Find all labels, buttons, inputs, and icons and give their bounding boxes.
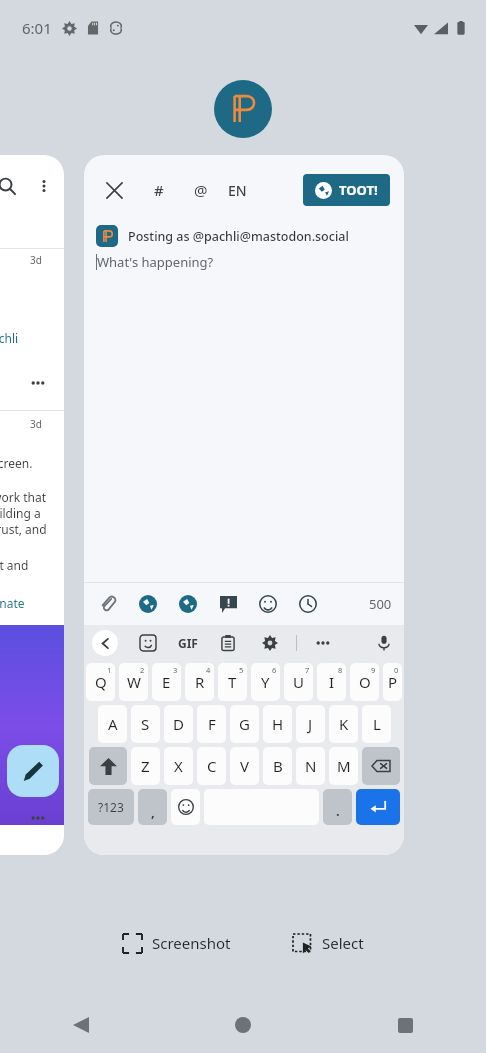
button[interactable]: G xyxy=(230,705,259,743)
button[interactable]: Recent apps xyxy=(324,997,486,1053)
staticText: W xyxy=(127,672,141,692)
staticText: 5 xyxy=(239,665,244,675)
staticText: A xyxy=(108,714,118,734)
button[interactable]: Emoji xyxy=(256,592,280,616)
staticText: Select xyxy=(322,933,364,953)
button[interactable]: Enter xyxy=(356,789,400,825)
button[interactable]: K xyxy=(329,705,358,743)
button[interactable]: Z xyxy=(131,747,160,785)
button[interactable]: Mention xyxy=(186,175,216,205)
staticText: X xyxy=(174,756,183,776)
staticText: O xyxy=(359,672,371,692)
staticText: achli xyxy=(0,330,19,346)
button[interactable]: Select xyxy=(283,925,374,961)
staticText: K xyxy=(339,714,349,734)
button[interactable]: M xyxy=(329,747,358,785)
button[interactable]: Shift xyxy=(89,747,127,785)
button[interactable]: N xyxy=(296,747,325,785)
staticText: N xyxy=(305,756,317,776)
staticText: D xyxy=(173,714,184,734)
button[interactable]: TOOT! xyxy=(303,174,390,206)
button[interactable]: More xyxy=(311,631,335,655)
button[interactable]: O xyxy=(350,663,379,701)
staticText: ?123 xyxy=(98,799,124,815)
staticText: P xyxy=(388,672,398,692)
button[interactable]: Q xyxy=(86,663,115,701)
other: Pachli app icon xyxy=(214,80,272,138)
button[interactable]: Language xyxy=(176,592,200,616)
button[interactable]: EN xyxy=(228,175,247,205)
button[interactable]: W xyxy=(119,663,148,701)
button[interactable]: . xyxy=(323,789,352,825)
staticText: GIF xyxy=(178,635,198,651)
staticText: T xyxy=(228,672,237,692)
staticText: F xyxy=(208,714,216,734)
button[interactable]: E xyxy=(152,663,181,701)
staticText: @ xyxy=(194,180,208,200)
button[interactable]: Compose xyxy=(7,745,59,797)
staticText: 500 xyxy=(369,595,392,613)
staticText: S xyxy=(141,714,150,734)
button[interactable]: Back xyxy=(0,997,162,1053)
staticText: G xyxy=(239,714,250,734)
button[interactable]: Home xyxy=(162,997,324,1053)
button[interactable]: Screenshot xyxy=(113,925,241,961)
staticText: J xyxy=(308,714,313,734)
staticText: 6:01 xyxy=(22,18,52,38)
button[interactable]: H xyxy=(263,705,292,743)
button[interactable]: B xyxy=(263,747,292,785)
button[interactable]: P xyxy=(383,663,402,701)
button[interactable]: C xyxy=(197,747,226,785)
staticText: Z xyxy=(141,756,150,776)
staticText: H xyxy=(272,714,284,734)
staticText: 7 xyxy=(305,665,310,675)
button[interactable]: Close xyxy=(98,174,130,206)
staticText: EN xyxy=(228,181,247,200)
staticText: 3 xyxy=(173,665,178,675)
button[interactable]: I xyxy=(317,663,346,701)
staticText: Screenshot xyxy=(152,933,231,953)
button[interactable]: Clipboard xyxy=(216,631,240,655)
staticText: E xyxy=(162,672,171,692)
staticText: work that xyxy=(0,489,46,505)
button[interactable]: Attach file xyxy=(96,592,120,616)
button[interactable]: Keyboard settings xyxy=(258,631,282,655)
staticText: Q xyxy=(95,672,107,692)
staticText: 4 xyxy=(206,665,211,675)
staticText: . xyxy=(336,802,340,820)
button[interactable]: A xyxy=(98,705,127,743)
button[interactable]: S xyxy=(131,705,160,743)
staticText: L xyxy=(373,714,381,734)
button[interactable]: V xyxy=(230,747,259,785)
button[interactable]: X xyxy=(164,747,193,785)
button[interactable]: Emoji keyboard xyxy=(171,789,200,825)
button[interactable]: Y xyxy=(251,663,280,701)
button[interactable]: Backspace xyxy=(362,747,400,785)
staticText: onate xyxy=(0,595,25,611)
button[interactable]: F xyxy=(197,705,226,743)
staticText: screen. xyxy=(0,455,33,471)
button[interactable]: R xyxy=(185,663,214,701)
staticText: nt and xyxy=(0,557,29,573)
button[interactable]: T xyxy=(218,663,247,701)
staticText: 3d xyxy=(30,417,42,431)
button[interactable]: L xyxy=(362,705,391,743)
button[interactable]: Hashtag xyxy=(144,175,174,205)
button[interactable]: Stickers xyxy=(136,631,160,655)
button[interactable]: Schedule xyxy=(296,592,320,616)
button[interactable]: J xyxy=(296,705,325,743)
staticText: Posting as @pachli@mastodon.social xyxy=(128,228,349,245)
staticText: C xyxy=(207,756,217,776)
button[interactable]: GIF xyxy=(178,635,198,651)
button[interactable]: ?123 xyxy=(88,789,134,825)
button[interactable]: Voice input xyxy=(372,631,396,655)
button[interactable]: Back xyxy=(92,630,118,656)
button[interactable]: D xyxy=(164,705,193,743)
button[interactable]: , xyxy=(138,789,167,825)
button[interactable]: Visibility xyxy=(136,592,160,616)
button[interactable]: Content warning xyxy=(216,592,240,616)
button[interactable]: U xyxy=(284,663,313,701)
staticText: uilding a xyxy=(0,505,41,521)
staticText: 6 xyxy=(272,665,277,675)
